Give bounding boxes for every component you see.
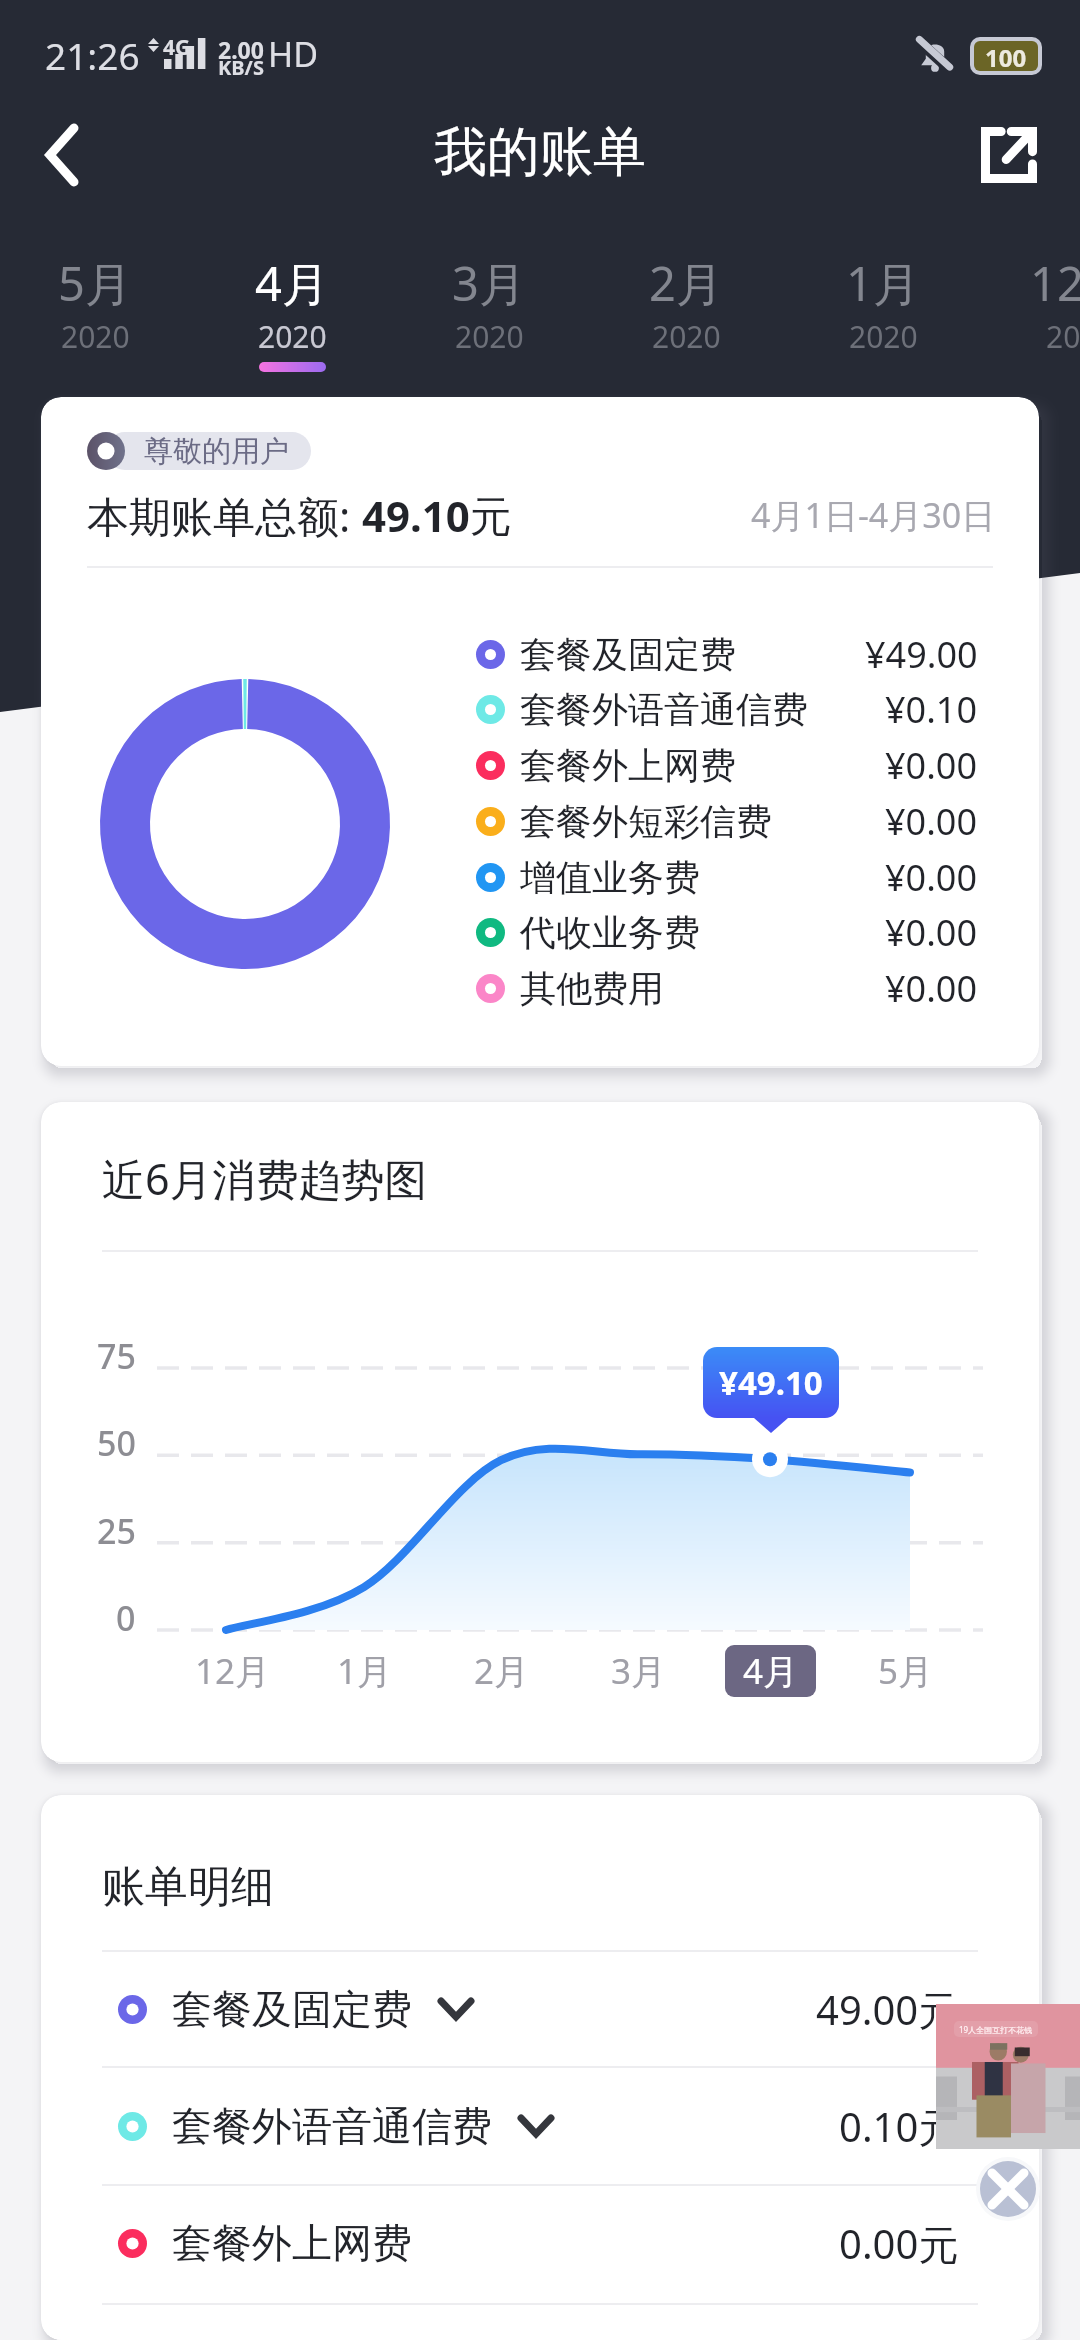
button[interactable]: 套餐及固定费 [41,1952,1039,2066]
staticText: 套餐外语音通信费 [172,2101,492,2151]
button[interactable]: 2月 [588,220,784,370]
staticText: 2.00 [218,34,264,65]
button[interactable]: 12月 [187,1645,278,1697]
button[interactable]: 2月 [456,1645,547,1697]
staticText: 5月 [878,1647,934,1695]
staticText: 2019 [1046,316,1080,357]
staticText: 近6月消费趋势图 [102,1149,428,1208]
button[interactable]: 套餐外语音通信费 [41,2069,1039,2183]
staticText: 代收业务费 [520,910,700,955]
staticText: 4G [163,33,191,62]
button[interactable]: 套餐外上网费 [41,2186,1039,2300]
staticText: 我的账单 [434,119,646,186]
button[interactable]: 1月 [785,220,981,370]
staticText: 套餐外语音通信费 [520,687,808,732]
staticText: 增值业务费 [520,855,700,900]
staticText: 2月 [649,251,723,315]
button[interactable]: 4月 [725,1645,816,1697]
staticText: 5月 [58,251,132,315]
staticText: ¥0.10 [885,685,978,734]
staticText: 套餐外上网费 [520,743,736,788]
staticText: 12月 [195,1647,271,1695]
staticText: ¥0.00 [885,964,978,1013]
staticText: 4月 [255,251,329,315]
button[interactable]: 5月 [0,220,193,370]
button[interactable]: 4月 [194,220,390,370]
button[interactable]: Close ad [980,2161,1036,2217]
staticText: KB/S [218,54,264,81]
staticText: 本期账单总额: [87,487,362,544]
staticText: ¥0.00 [885,853,978,902]
staticText: 49.10 [362,487,470,544]
staticText: 尊敬的用户 [144,433,289,470]
staticText: 2020 [455,316,524,357]
staticText: 1月 [337,1647,393,1695]
button[interactable]: Advertisement [936,2004,1080,2149]
staticText: 2020 [61,316,130,357]
staticText: 其他费用 [520,966,664,1011]
button[interactable]: 3月 [391,220,587,370]
staticText: 套餐外短彩信费 [520,799,772,844]
staticText: 1月 [846,251,920,315]
staticText: 元 [470,491,512,544]
staticText: 4月 [743,1647,799,1695]
staticText: 2020 [849,316,918,357]
staticText: 2020 [652,316,721,357]
button[interactable]: Back [0,101,116,209]
staticText: 19人全国互打不花钱 [959,2024,1033,2035]
staticText: ¥0.00 [885,797,978,846]
button[interactable]: 5月 [860,1645,951,1697]
staticText: 50 [97,1420,136,1466]
staticText: HD [268,31,319,77]
staticText: 套餐外上网费 [172,2218,412,2268]
staticText: 25 [97,1508,136,1554]
staticText: 49.00元 [816,1982,959,2037]
staticText: 0 [116,1595,136,1641]
staticText: 21:26 [45,30,140,80]
button[interactable]: Share [969,115,1049,195]
staticText: 12月 [1030,251,1080,315]
staticText: 2020 [258,316,327,357]
staticText: 100 [985,41,1027,71]
button[interactable]: 12月 [982,220,1080,370]
staticText: 0.10元 [839,2099,959,2154]
staticText: ¥0.00 [885,741,978,790]
staticText: 账单明细 [102,1860,274,1914]
staticText: 套餐及固定费 [172,1984,412,2034]
staticText: ¥49.10 [719,1360,823,1405]
staticText: ¥0.00 [885,908,978,957]
staticText: 75 [97,1333,136,1379]
staticText: 套餐及固定费 [520,632,736,677]
staticText: 4月1日-4月30日 [751,492,996,538]
staticText: 0.00元 [839,2216,959,2271]
button[interactable]: 1月 [319,1645,410,1697]
staticText: 2月 [474,1647,530,1695]
staticText: ¥49.00 [865,630,978,679]
staticText: 3月 [452,251,526,315]
button[interactable]: 3月 [593,1645,684,1697]
staticText: 3月 [611,1647,667,1695]
